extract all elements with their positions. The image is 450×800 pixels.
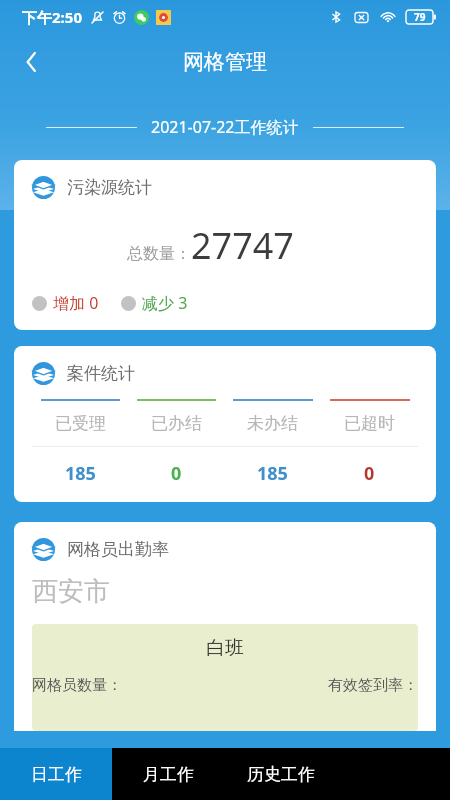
- staticText: 79: [414, 10, 426, 24]
- staticText: 185: [257, 461, 288, 486]
- staticText: 0: [364, 461, 375, 486]
- staticText: 日工作: [31, 764, 82, 785]
- staticText: 历史工作: [247, 764, 315, 785]
- staticText: 有效签到率：: [328, 676, 418, 695]
- staticText: 网格管理: [183, 49, 267, 75]
- staticText: 案件统计: [67, 363, 135, 384]
- staticText: 月工作: [143, 764, 194, 785]
- staticText: 白班: [32, 636, 418, 660]
- staticText: 污染源统计: [67, 177, 152, 198]
- staticText: 下午2:50: [22, 7, 82, 27]
- staticText: 减少 3: [142, 292, 188, 314]
- staticText: 已超时: [344, 413, 395, 434]
- staticText: 西安市: [32, 575, 110, 608]
- button[interactable]: 历史工作: [224, 748, 337, 800]
- staticText: 2021-07-22工作统计: [151, 116, 299, 138]
- staticText: 总数量：: [127, 244, 191, 264]
- staticText: 增加 0: [53, 292, 99, 314]
- button[interactable]: 污染源统计: [14, 160, 436, 330]
- staticText: 0: [171, 461, 182, 486]
- button[interactable]: 月工作: [112, 748, 224, 800]
- button[interactable]: 案件统计: [14, 346, 436, 502]
- staticText: 27747: [191, 221, 294, 270]
- staticText: 185: [65, 461, 96, 486]
- staticText: 已受理: [55, 413, 106, 434]
- staticText: 未办结: [247, 413, 298, 434]
- staticText: 已办结: [151, 413, 202, 434]
- button[interactable]: 网格员出勤率: [14, 522, 436, 731]
- staticText: 网格员数量：: [32, 676, 328, 695]
- button[interactable]: Back: [8, 38, 56, 86]
- button[interactable]: 日工作: [0, 748, 112, 800]
- staticText: 网格员出勤率: [67, 539, 169, 560]
